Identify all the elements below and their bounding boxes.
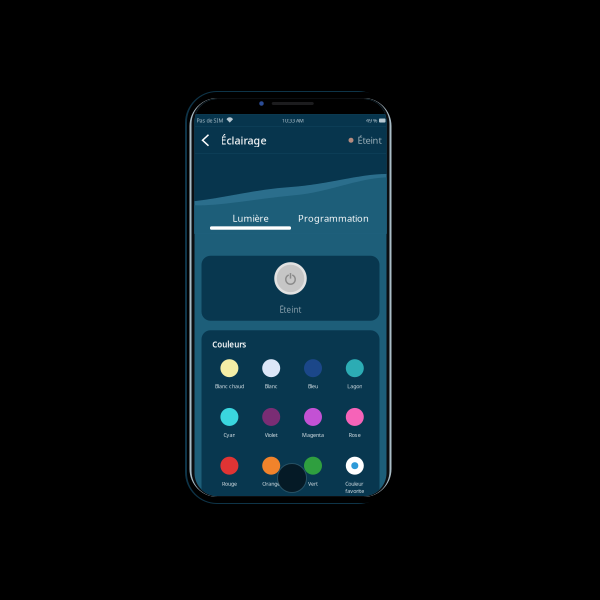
staticText: 49 % [366, 117, 377, 124]
button[interactable]: Cyan [208, 408, 250, 457]
button[interactable]: Couleur favorite [334, 457, 376, 505]
staticText: Cyan [223, 431, 235, 438]
staticText: Vert [308, 480, 318, 487]
button[interactable]: Violet [250, 408, 292, 457]
button[interactable]: Éteint [348, 128, 386, 152]
button[interactable]: Programmation [296, 212, 370, 230]
button[interactable]: Blanc chaud [208, 359, 250, 408]
staticText: Blanc [265, 383, 278, 390]
staticText: Blanc chaud [215, 383, 244, 390]
staticText: Éteint [357, 134, 381, 146]
button[interactable]: Vert [292, 457, 334, 505]
staticText: Bleu [308, 383, 318, 390]
staticText: Pas de SIM [196, 117, 223, 124]
staticText: Magenta [302, 431, 324, 438]
button[interactable]: Lumière [204, 212, 296, 230]
staticText: Programmation [298, 212, 369, 224]
staticText: Violet [265, 431, 278, 438]
staticText: Couleur favorite [345, 480, 364, 494]
staticText: Couleurs [212, 339, 246, 350]
button[interactable]: Blanc [250, 359, 292, 408]
button[interactable]: Retour [194, 129, 214, 152]
button[interactable]: Orange [250, 457, 292, 505]
staticText: Rose [349, 431, 361, 438]
button[interactable]: Bleu [292, 359, 334, 408]
button[interactable]: Magenta [292, 408, 334, 457]
staticText: Lagon [347, 383, 362, 390]
button[interactable]: Lagon [334, 359, 376, 408]
staticText: Orange [262, 480, 280, 487]
staticText: Éteint [279, 304, 301, 315]
staticText: Éclairage [220, 133, 266, 147]
staticText: Rouge [222, 480, 237, 487]
button[interactable]: Rouge [208, 457, 250, 505]
button[interactable]: Allumer [273, 261, 307, 295]
staticText: 10:33 AM [282, 117, 304, 124]
button[interactable]: Rose [334, 408, 376, 457]
staticText: Lumière [232, 212, 268, 224]
